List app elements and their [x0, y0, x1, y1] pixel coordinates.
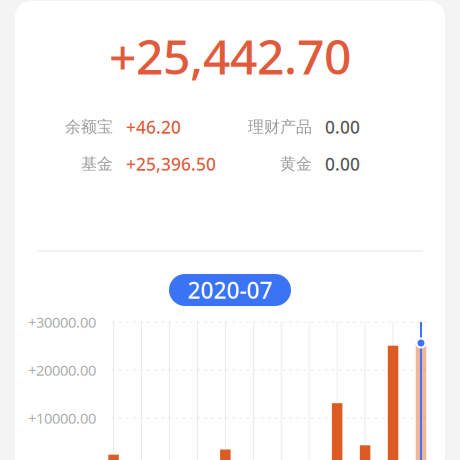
button[interactable]: 2020-07	[169, 274, 291, 306]
staticText: 0.00	[325, 115, 360, 138]
staticText: +46.20	[126, 115, 181, 138]
staticText: 余额宝	[65, 117, 113, 137]
staticText: 基金	[81, 154, 113, 174]
staticText: +25,396.50	[126, 152, 216, 175]
staticText: +10000.00	[28, 408, 96, 428]
staticText: +25,442.70	[109, 24, 351, 88]
staticText: 2020-07	[187, 275, 272, 305]
staticText: 理财产品	[248, 117, 312, 137]
staticText: 0.00	[325, 152, 360, 175]
staticText: +30000.00	[28, 312, 96, 332]
staticText: +20000.00	[28, 360, 96, 380]
staticText: 黄金	[280, 154, 312, 174]
